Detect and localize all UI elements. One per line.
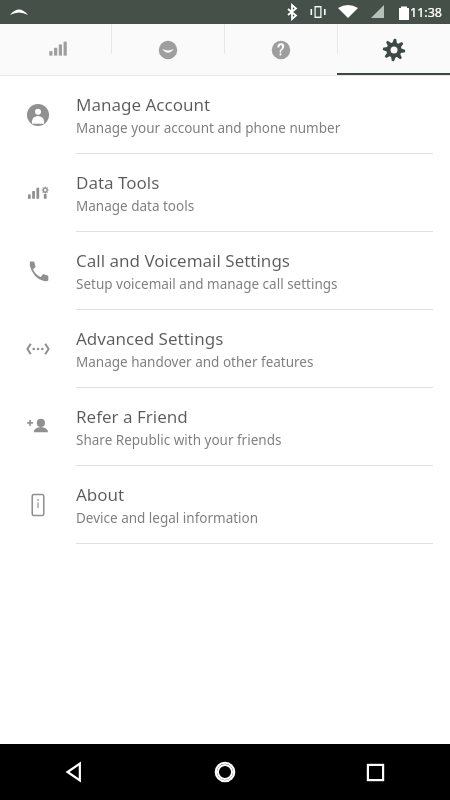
button[interactable]: Data Tools — [0, 154, 450, 231]
staticText: Advanced Settings — [76, 327, 224, 350]
staticText: Manage Account — [76, 93, 211, 116]
button[interactable]: Refer a Friend — [0, 388, 450, 465]
staticText: Manage your account and phone number — [76, 119, 341, 137]
staticText: Data Tools — [76, 171, 160, 194]
button[interactable]: Advanced Settings — [0, 310, 450, 387]
staticText: Refer a Friend — [76, 405, 188, 428]
button[interactable]: Signal — [0, 24, 111, 76]
button[interactable]: Back — [0, 744, 150, 800]
button[interactable]: Home — [150, 744, 300, 800]
button[interactable]: About — [0, 466, 450, 543]
button[interactable]: Recents — [300, 744, 450, 800]
button[interactable]: Manage Account — [0, 76, 450, 153]
staticText: Call and Voicemail Settings — [76, 249, 290, 272]
staticText: About — [76, 483, 125, 506]
staticText: Share Republic with your friends — [76, 431, 282, 449]
staticText: Setup voicemail and manage call settings — [76, 275, 338, 293]
staticText: 11:38 — [410, 4, 442, 21]
button[interactable]: Help — [225, 24, 337, 76]
button[interactable]: Call and Voicemail Settings — [0, 232, 450, 309]
staticText: Manage handover and other features — [76, 353, 314, 371]
staticText: Manage data tools — [76, 197, 195, 215]
button[interactable]: Settings — [338, 24, 450, 76]
staticText: Device and legal information — [76, 509, 259, 527]
button[interactable]: Coverage — [112, 24, 224, 76]
